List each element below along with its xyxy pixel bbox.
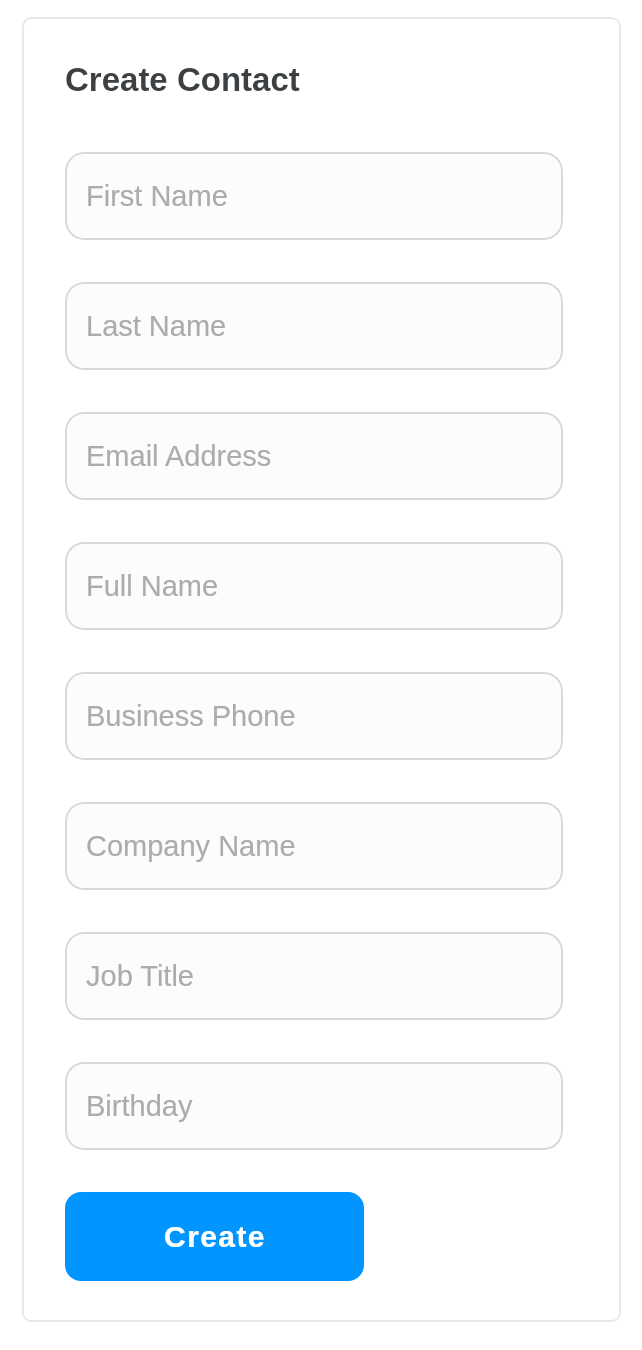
button[interactable]: Email Address: [65, 412, 563, 500]
staticText: Create Contact: [65, 61, 300, 98]
staticText: Last Name: [86, 310, 227, 342]
button[interactable]: Full Name: [65, 542, 563, 630]
staticText: Email Address: [86, 440, 272, 472]
staticText: Full Name: [86, 570, 219, 602]
button[interactable]: First Name: [65, 152, 563, 240]
staticText: Birthday: [86, 1090, 193, 1122]
staticText: Company Name: [86, 830, 296, 862]
button[interactable]: Company Name: [65, 802, 563, 890]
button[interactable]: Birthday: [65, 1062, 563, 1150]
button[interactable]: Create: [65, 1192, 364, 1281]
staticText: Job Title: [86, 960, 194, 992]
button[interactable]: Last Name: [65, 282, 563, 370]
staticText: Create: [164, 1220, 266, 1254]
button[interactable]: Job Title: [65, 932, 563, 1020]
staticText: First Name: [86, 180, 228, 212]
staticText: Business Phone: [86, 700, 296, 732]
button[interactable]: Business Phone: [65, 672, 563, 760]
